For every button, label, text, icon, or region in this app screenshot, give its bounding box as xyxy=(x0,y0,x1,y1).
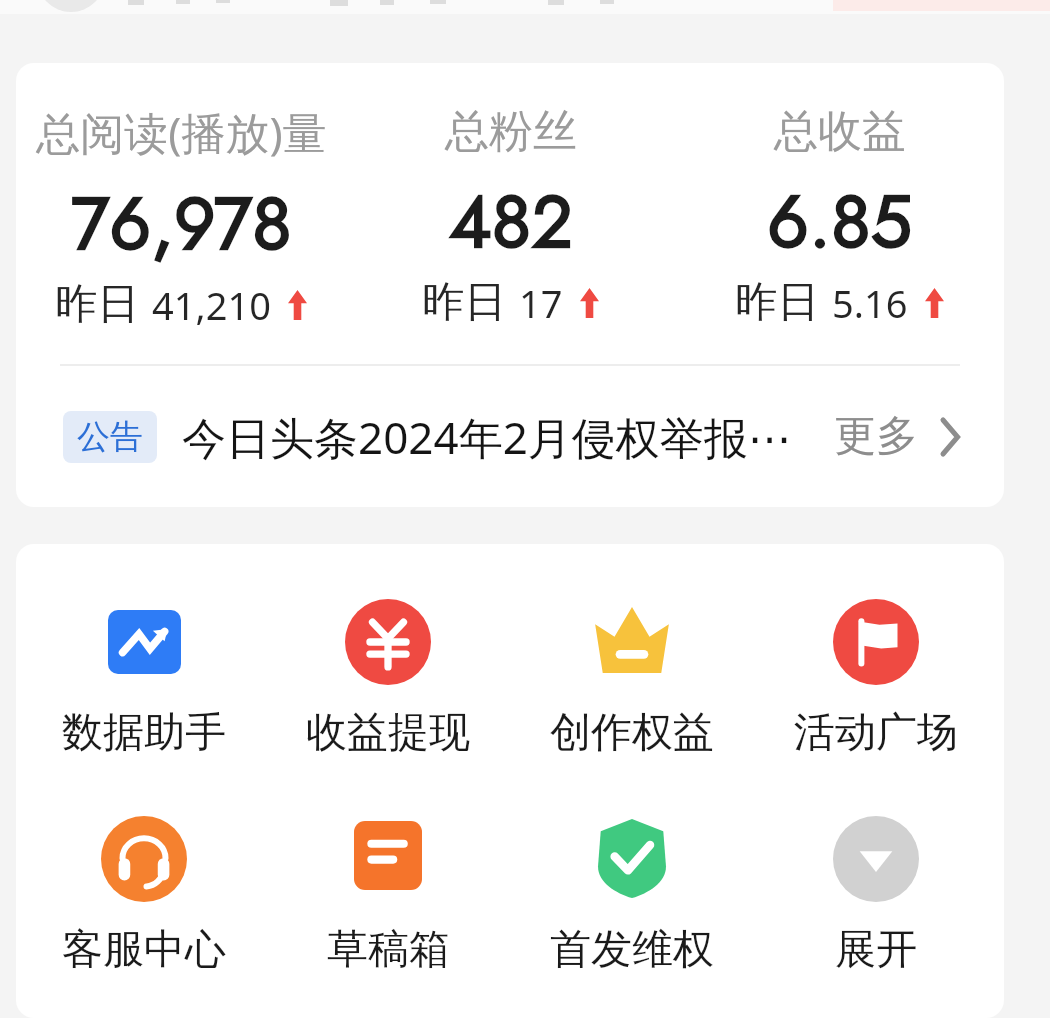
staticText: 总阅读(播放)量 xyxy=(36,100,327,164)
other: 展开 xyxy=(833,816,919,902)
staticText: 昨日 xyxy=(422,276,506,329)
staticText: 草稿箱 xyxy=(327,924,450,976)
staticText: 客服中心 xyxy=(62,924,226,976)
staticText: 今日头条2024年2月侵权举报⋯ xyxy=(182,407,792,467)
button[interactable]: 收益提现 xyxy=(266,597,510,759)
other: 活动广场 xyxy=(833,599,919,685)
other: 创作权益 xyxy=(589,599,675,685)
button[interactable]: 草稿箱 xyxy=(266,814,510,976)
staticText: 总粉丝 xyxy=(445,100,577,162)
staticText: 6.85 xyxy=(767,169,912,274)
other: 首发维权 xyxy=(589,816,675,902)
staticText: 昨日 xyxy=(735,276,819,329)
staticText: 更多 xyxy=(834,410,918,463)
other: 数据助手 xyxy=(108,610,181,674)
staticText: 展开 xyxy=(835,924,917,976)
staticText: 总收益 xyxy=(774,100,906,162)
staticText: 数据助手 xyxy=(62,707,226,759)
staticText: 482 xyxy=(449,169,573,274)
staticText: 收益提现 xyxy=(306,707,470,759)
staticText: 昨日 xyxy=(55,278,139,331)
button[interactable]: 数据助手 xyxy=(22,597,266,759)
other: 草稿箱 xyxy=(354,821,422,890)
button[interactable]: 公告 xyxy=(16,366,1004,507)
button[interactable]: 首发维权 xyxy=(510,814,754,976)
button[interactable]: 创作权益 xyxy=(510,597,754,759)
staticText: 公告 xyxy=(77,416,143,458)
staticText: 41,210 xyxy=(152,279,271,331)
staticText: 创作权益 xyxy=(550,707,714,759)
staticText: 活动广场 xyxy=(794,707,958,759)
staticText: 76,978 xyxy=(71,171,292,276)
staticText: 17 xyxy=(519,277,563,329)
staticText: 首发维权 xyxy=(550,924,714,976)
other: 客服中心 xyxy=(101,816,187,902)
staticText: 5.16 xyxy=(832,277,908,329)
button[interactable]: 活动广场 xyxy=(754,597,998,759)
other: 收益提现 xyxy=(345,599,431,685)
button[interactable]: 展开 xyxy=(754,814,998,976)
button[interactable]: 客服中心 xyxy=(22,814,266,976)
